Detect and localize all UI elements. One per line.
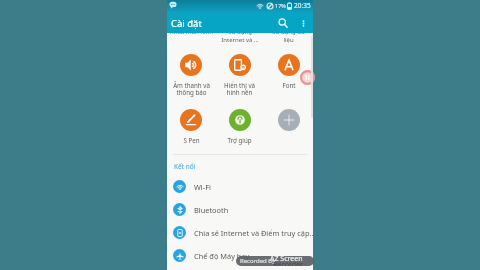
button[interactable]: Search <box>273 13 293 33</box>
button[interactable]: Chia sẻ Internet và Điểm truy cập.. <box>167 221 313 244</box>
button[interactable]: Wi-Fi <box>167 175 313 198</box>
button[interactable]: Trợ giúp <box>215 109 264 144</box>
staticText: Chia sẻ Internet và Điểm truy cập.. <box>194 228 313 238</box>
staticText: Font <box>282 81 296 89</box>
staticText: Âm thanh và thông báo <box>173 81 210 96</box>
staticText: Internet và ... <box>221 36 259 44</box>
button[interactable] <box>264 109 313 144</box>
staticText: Sử dụng <box>228 33 252 36</box>
button[interactable]: Hiển thị và hình nền <box>215 54 264 96</box>
staticText: Kết nối <box>174 162 196 171</box>
staticText: S Pen <box>183 136 200 144</box>
staticText: Wi-Fi <box>194 182 211 192</box>
button[interactable]: Âm thanh và thông báo <box>167 54 215 96</box>
staticText: Bluetooth <box>194 205 229 215</box>
staticText: 17% <box>275 2 286 9</box>
staticText: Hiển thị và hình nền <box>224 81 255 96</box>
staticText: Khoá màn hình <box>170 33 213 36</box>
staticText: Trợ giúp <box>227 136 252 144</box>
button[interactable]: Bluetooth <box>167 198 313 221</box>
button[interactable]: S Pen <box>167 109 215 144</box>
staticText: Recorded by <box>240 257 275 265</box>
staticText: Sử dụng dữ <box>272 33 305 36</box>
button[interactable]: Pause recording <box>300 70 315 85</box>
staticText: Chế độ Máy bay <box>194 251 250 261</box>
button[interactable]: Font <box>264 54 313 89</box>
button[interactable]: More options <box>293 13 313 33</box>
button[interactable]: Chế độ Máy bay <box>167 244 313 267</box>
staticText: AZ Screen <box>270 256 303 264</box>
staticText: Cài đặt <box>171 17 202 30</box>
staticText: Recorder <box>273 260 303 266</box>
staticText: liệu <box>283 36 294 44</box>
staticText: 20:35 <box>294 1 311 10</box>
